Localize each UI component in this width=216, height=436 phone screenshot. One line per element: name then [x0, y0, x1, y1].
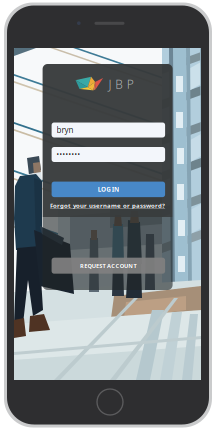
button[interactable]: REQUEST ACCOUNT — [52, 258, 165, 274]
button[interactable]: bryn — [52, 122, 165, 137]
staticText: •••••••• — [57, 150, 81, 159]
staticText: P — [127, 76, 134, 92]
button[interactable]: Forgot your username or password? — [43, 201, 173, 210]
staticText: B — [115, 76, 123, 92]
staticText: bryn — [57, 125, 74, 135]
button[interactable]: •••••••• — [52, 147, 165, 162]
staticText: LOGIN — [98, 185, 119, 194]
staticText: Forgot your username or password? — [50, 201, 165, 210]
staticText: J — [109, 76, 112, 92]
button[interactable]: LOGIN — [52, 182, 165, 197]
staticText: REQUEST ACCOUNT — [80, 262, 137, 269]
